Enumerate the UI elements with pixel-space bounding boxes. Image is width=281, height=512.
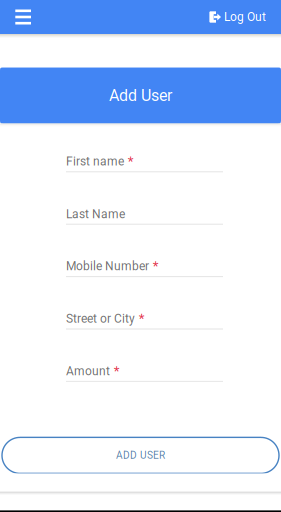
button[interactable]: Menu [0, 0, 39, 34]
staticText: Add User [109, 86, 172, 105]
staticText: Street or City [66, 312, 135, 326]
staticText: Last Name [66, 207, 125, 221]
staticText: Mobile Number [66, 259, 149, 273]
staticText: * [153, 258, 159, 274]
staticText: * [114, 363, 120, 378]
staticText: First name [66, 154, 124, 168]
staticText: * [139, 310, 145, 326]
staticText: Log Out [224, 10, 266, 24]
staticText: ADD USER [116, 449, 165, 461]
staticText: * [128, 153, 134, 169]
staticText: Amount [66, 364, 110, 378]
button[interactable]: Log Out [209, 0, 281, 34]
button[interactable]: ADD USER [2, 437, 279, 473]
